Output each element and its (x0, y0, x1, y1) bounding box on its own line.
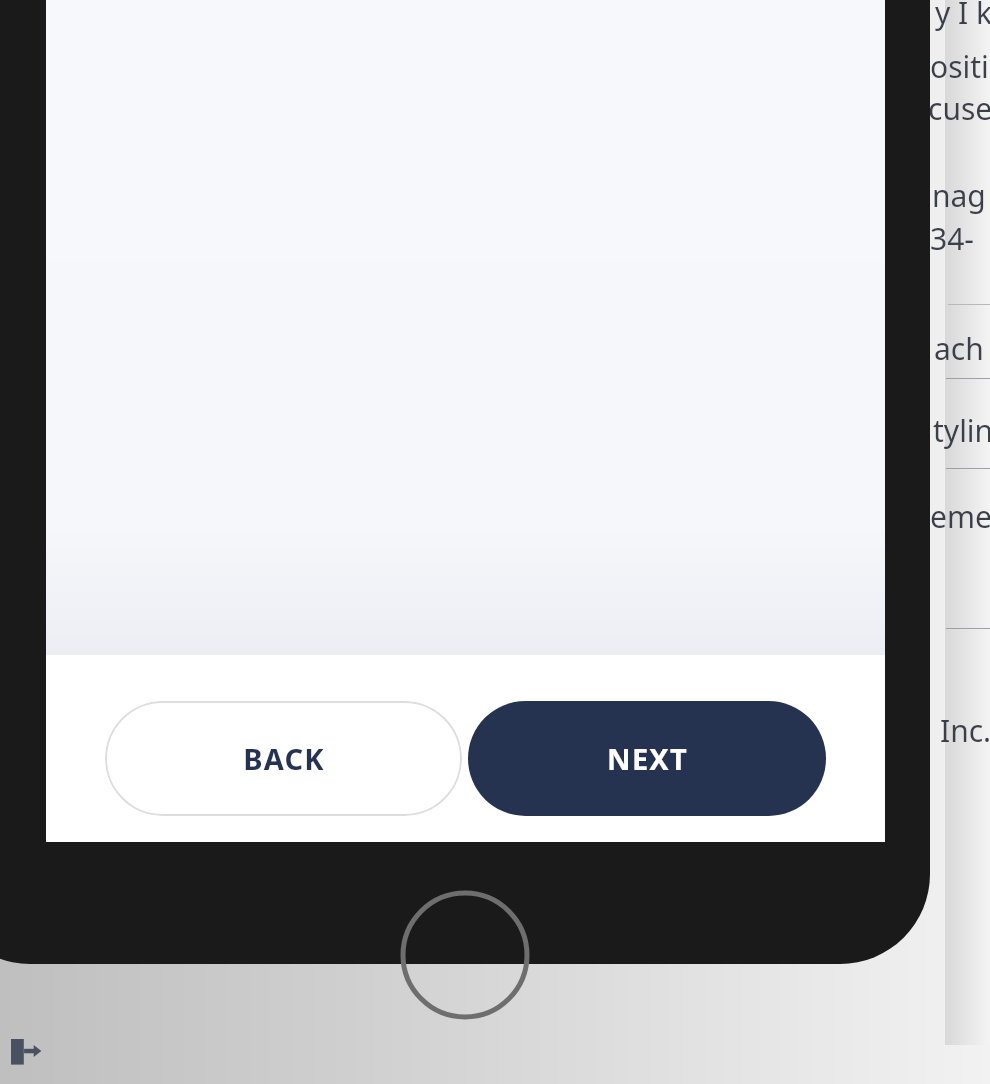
staticText: ach (934, 328, 984, 369)
staticText: tylin (933, 410, 990, 451)
staticText: emer (930, 496, 990, 537)
staticText: ositi (930, 46, 989, 87)
button[interactable]: NEXT (468, 701, 826, 816)
staticText: nag (932, 175, 986, 216)
staticText: Inc. (940, 710, 990, 751)
button[interactable]: Home (400, 890, 530, 1020)
button[interactable]: BACK (105, 701, 462, 816)
staticText: 34- (930, 218, 974, 259)
staticText: y I k (935, 0, 990, 33)
staticText: BACK (243, 739, 325, 778)
staticText: cuse (928, 88, 990, 129)
staticText: NEXT (607, 739, 688, 778)
